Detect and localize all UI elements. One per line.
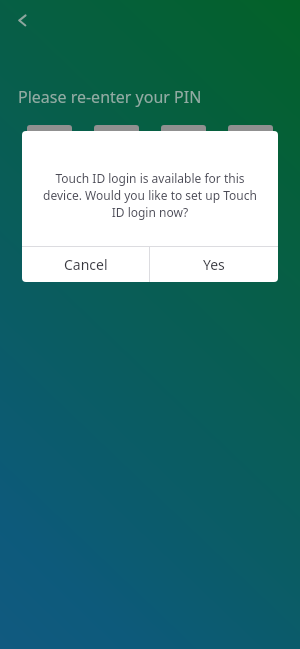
button[interactable]: PIN digit 4 [228,125,273,179]
button[interactable]: Yes [150,247,278,282]
button[interactable]: Cancel [22,247,149,282]
staticText: Touch ID login is available for this dev… [40,170,260,221]
button[interactable]: Back [6,4,38,36]
button[interactable]: PIN digit 1 [27,125,72,179]
staticText: Yes [203,255,225,274]
staticText: Please re-enter your PIN [18,86,202,108]
button[interactable]: PIN digit 3 [161,125,206,179]
staticText: Cancel [64,255,108,274]
button[interactable]: PIN digit 2 [94,125,139,179]
